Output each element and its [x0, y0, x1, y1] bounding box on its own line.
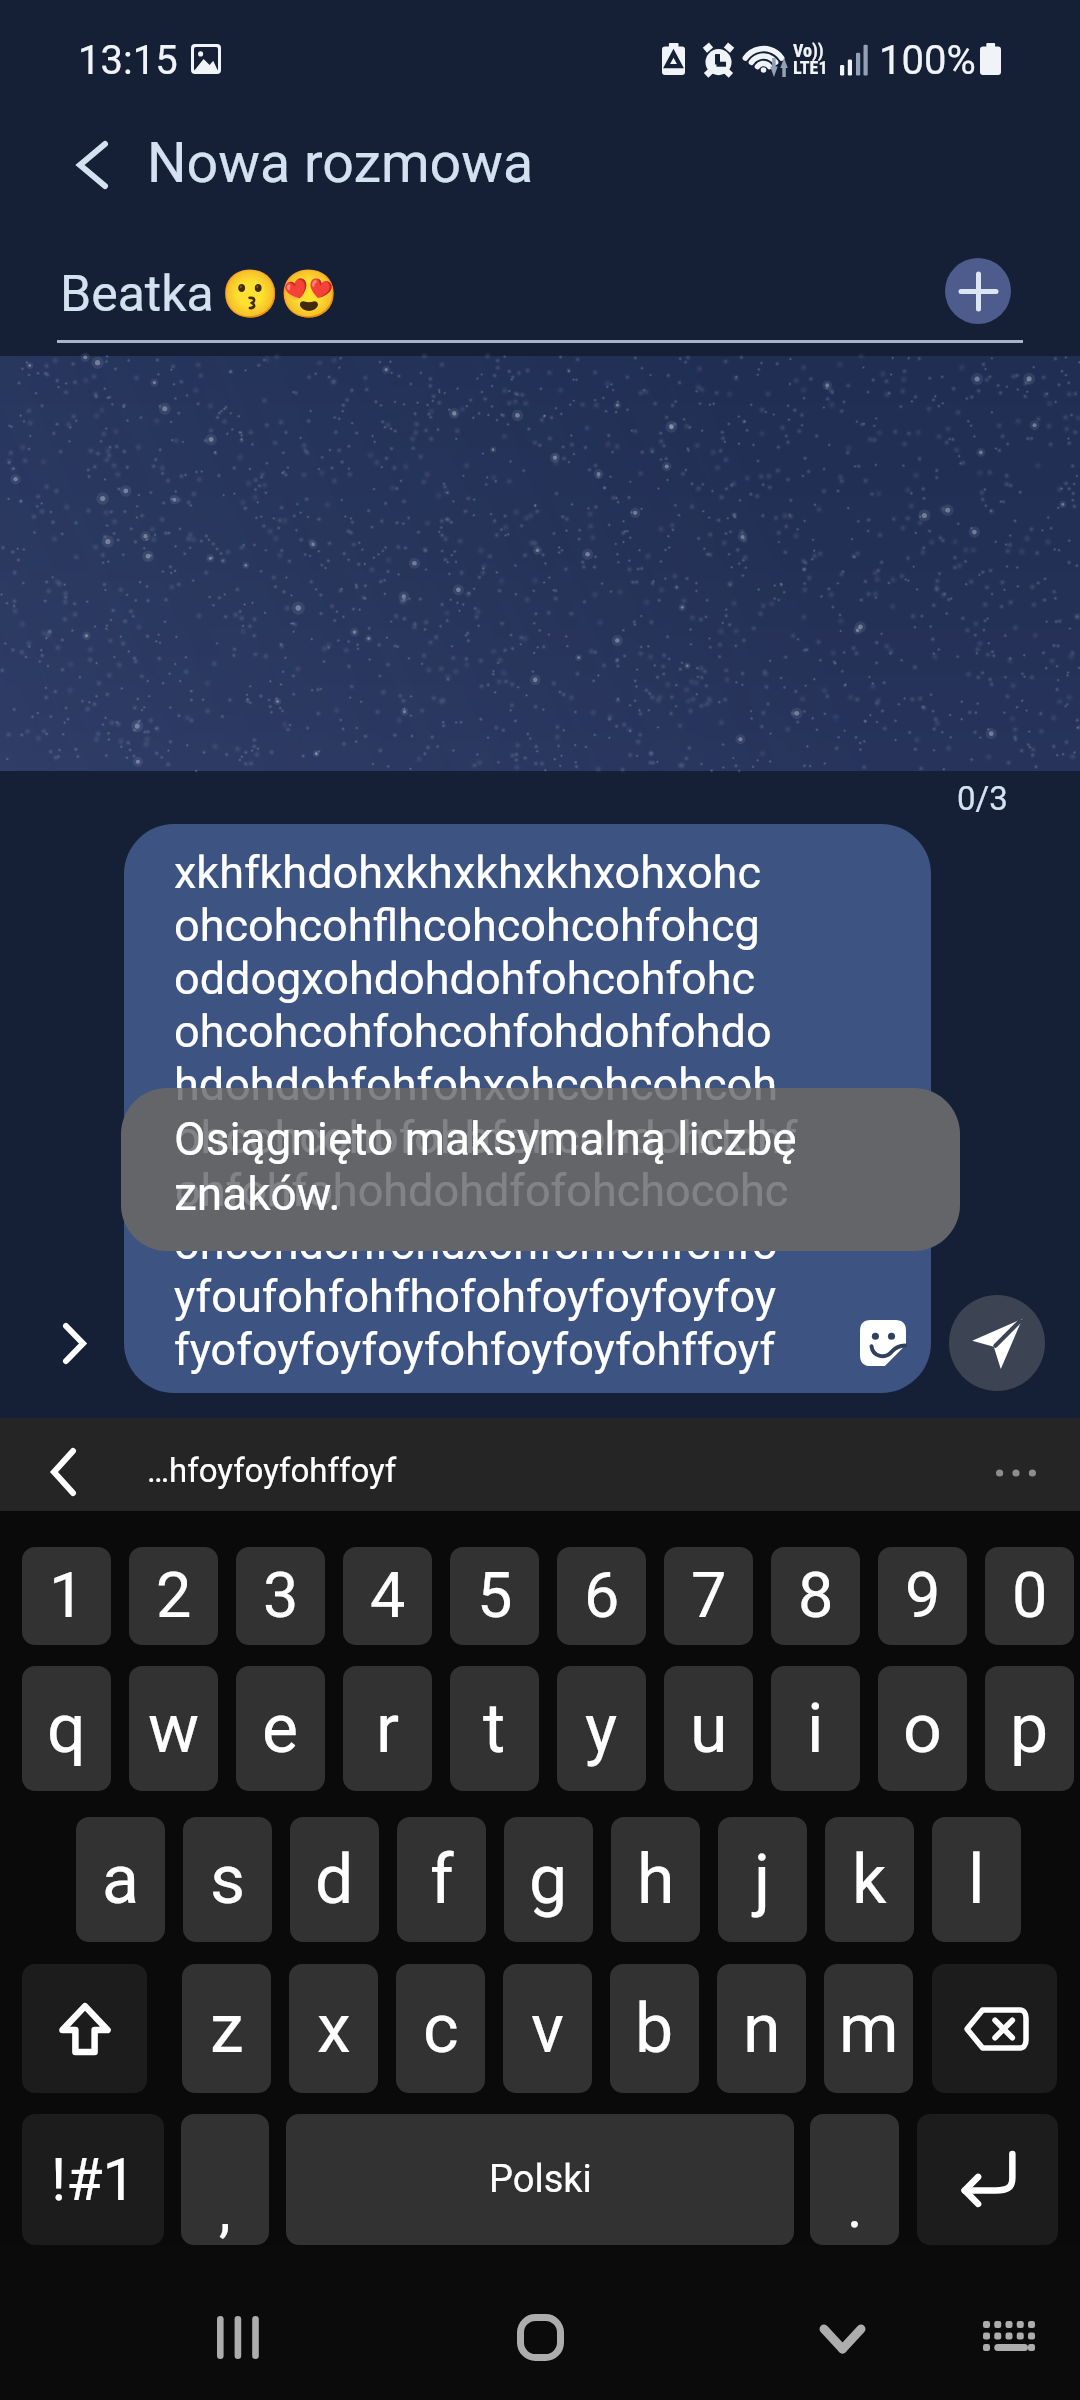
button[interactable]: !#1	[22, 2114, 164, 2245]
button[interactable]: l	[932, 1817, 1021, 1942]
button[interactable]: c	[396, 1964, 485, 2093]
button[interactable]: a	[76, 1817, 165, 1942]
staticText: ohcohcohbfohbfohcohdohdohf	[175, 1111, 798, 1164]
button[interactable]: h	[611, 1817, 700, 1942]
staticText: hdohdohfohfohxohcohcohcoh	[174, 1058, 777, 1111]
staticText: v	[531, 1989, 564, 2069]
button[interactable]: u	[664, 1666, 753, 1791]
staticText: ,	[219, 2175, 231, 2244]
button[interactable]: .	[810, 2114, 899, 2245]
button[interactable]: j	[718, 1817, 807, 1942]
button[interactable]: Add recipient	[945, 258, 1011, 324]
staticText: j	[754, 1840, 771, 1920]
button[interactable]: b	[610, 1964, 699, 2093]
button[interactable]: Backspace	[932, 1964, 1057, 2093]
staticText: b	[635, 1989, 674, 2069]
staticText: p	[1010, 1689, 1049, 1769]
staticText: c	[423, 1989, 459, 2069]
button[interactable]: 1	[22, 1547, 111, 1645]
button[interactable]: Expand	[38, 1307, 110, 1379]
button[interactable]: Stickers	[855, 1315, 911, 1371]
button[interactable]: Shift	[22, 1964, 147, 2093]
button[interactable]: ,	[181, 2114, 269, 2245]
staticText: 😗😍	[221, 266, 339, 321]
button[interactable]: e	[236, 1666, 325, 1791]
button[interactable]: Back	[30, 1439, 96, 1505]
staticText: 8	[798, 1559, 834, 1633]
staticText: Polski	[489, 2157, 592, 2202]
staticText: k	[852, 1840, 887, 1920]
button[interactable]: x	[289, 1964, 378, 2093]
button[interactable]: m	[824, 1964, 913, 2093]
staticText: LTE1	[793, 57, 828, 78]
staticText: 6	[584, 1559, 620, 1633]
staticText: 5	[477, 1559, 513, 1633]
button[interactable]: Send	[949, 1295, 1045, 1391]
button[interactable]: g	[504, 1817, 593, 1942]
staticText: q	[47, 1689, 86, 1769]
staticText: Vo))	[793, 40, 824, 61]
staticText: 3	[263, 1559, 299, 1633]
staticText: x	[317, 1989, 351, 2069]
button[interactable]: 3	[236, 1547, 325, 1645]
staticText: …hfoyfoyfohffoyf	[147, 1451, 397, 1490]
button[interactable]: k	[825, 1817, 914, 1942]
button[interactable]: 2	[129, 1547, 218, 1645]
staticText: 2	[156, 1559, 192, 1633]
button[interactable]: w	[129, 1666, 218, 1791]
staticText: t	[483, 1689, 506, 1769]
button[interactable]: 5	[450, 1547, 539, 1645]
button[interactable]: d	[290, 1817, 379, 1942]
staticText: fyofoyfoyfoyfohfoyfoyfohffoyf	[174, 1323, 776, 1376]
staticText: 100%	[879, 37, 976, 84]
staticText: ohfohfohohdohdfofohchocohc	[175, 1164, 789, 1217]
button[interactable]: n	[717, 1964, 806, 2093]
button[interactable]: t	[450, 1666, 539, 1791]
staticText: ohcohdohfohdxohfohfohfohfo	[174, 1217, 778, 1270]
button[interactable]: 4	[343, 1547, 432, 1645]
staticText: Beatka	[60, 265, 214, 324]
staticText: s	[210, 1840, 246, 1920]
staticText: !#1	[51, 2145, 136, 2214]
staticText: l	[968, 1840, 985, 1920]
staticText: ohfohfohohdohdfofohchocohc	[174, 1164, 788, 1217]
staticText: u	[690, 1689, 728, 1769]
button[interactable]: 9	[878, 1547, 967, 1645]
button[interactable]: 6	[557, 1547, 646, 1645]
staticText: 9	[905, 1559, 941, 1633]
button[interactable]: i	[771, 1666, 860, 1791]
staticText: oddogxohdohdohfohcohfohc	[174, 952, 756, 1005]
button[interactable]: Enter	[917, 2114, 1058, 2245]
button[interactable]: s	[183, 1817, 272, 1942]
button[interactable]: Home	[482, 2277, 598, 2398]
button[interactable]: r	[343, 1666, 432, 1791]
staticText: a	[102, 1840, 139, 1920]
button[interactable]: More options	[978, 1450, 1054, 1496]
staticText: z	[210, 1989, 244, 2069]
button[interactable]: p	[985, 1666, 1074, 1791]
button[interactable]: 7	[664, 1547, 753, 1645]
button[interactable]: Back	[59, 132, 125, 198]
button[interactable]: Hide keyboard	[784, 2278, 900, 2399]
button[interactable]: 8	[771, 1547, 860, 1645]
button[interactable]: 0	[985, 1547, 1074, 1645]
button[interactable]: y	[557, 1666, 646, 1791]
staticText: h	[637, 1840, 675, 1920]
staticText: 0	[1012, 1559, 1048, 1633]
button[interactable]: q	[22, 1666, 111, 1791]
staticText: .	[847, 2172, 863, 2241]
button[interactable]: xkhfkhdohxkhxkhxkhxohxohc	[124, 824, 931, 1393]
button[interactable]: z	[182, 1964, 271, 2093]
staticText: ohcohcohbfohbfohcohdohdohf	[174, 1111, 797, 1164]
button[interactable]: o	[878, 1666, 967, 1791]
button[interactable]: v	[503, 1964, 592, 2093]
staticText: Nowa rozmowa	[147, 131, 534, 196]
staticText: 13:15	[78, 37, 178, 84]
button[interactable]: Change keyboard	[951, 2275, 1067, 2396]
button[interactable]: f	[397, 1817, 486, 1942]
staticText: 0/3	[957, 779, 1008, 818]
staticText: yfoufohfohfhofohfoyfoyfoyfoy	[174, 1270, 777, 1323]
button[interactable]: Polski	[286, 2114, 794, 2245]
button[interactable]: Recent apps	[180, 2277, 296, 2398]
